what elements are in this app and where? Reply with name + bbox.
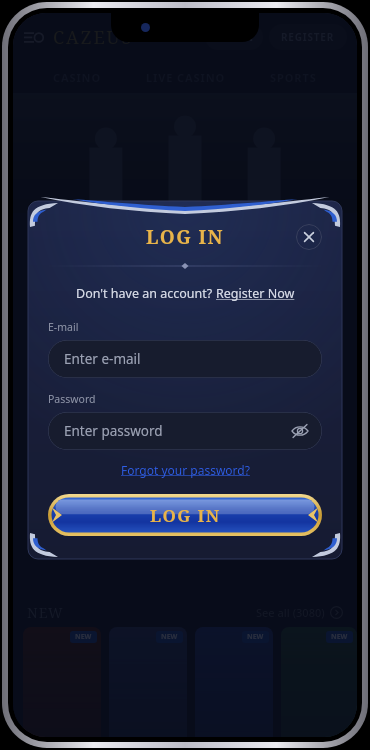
staticText: See all (3080) bbox=[256, 605, 325, 620]
staticText: Enter password bbox=[64, 422, 163, 440]
staticText: CAZEUS bbox=[53, 25, 134, 50]
staticText: Register Now bbox=[216, 285, 295, 302]
staticText: NEW bbox=[75, 632, 92, 642]
button[interactable]: NEW bbox=[109, 627, 187, 737]
button[interactable]: Enter e-mail bbox=[48, 340, 322, 378]
button[interactable]: Menu and search bbox=[23, 26, 45, 48]
staticText: LOG IN bbox=[146, 224, 224, 250]
button[interactable]: Register Now bbox=[216, 285, 295, 302]
button[interactable]: REGISTER bbox=[269, 24, 347, 50]
staticText: LOG IN bbox=[214, 30, 254, 44]
button[interactable]: NEW bbox=[195, 627, 273, 737]
staticText: Don't have an account? bbox=[76, 285, 216, 302]
button[interactable]: Forgot your password? bbox=[121, 462, 250, 478]
staticText: NEW bbox=[331, 632, 348, 642]
button[interactable]: NEW bbox=[23, 627, 101, 737]
button[interactable]: LOG IN bbox=[205, 24, 263, 50]
button[interactable]: Close bbox=[296, 224, 322, 250]
staticText: NEW bbox=[161, 632, 178, 642]
staticText: E-mail bbox=[48, 320, 79, 334]
staticText: Password bbox=[48, 392, 96, 406]
staticText: REGISTER bbox=[281, 30, 335, 44]
button[interactable]: NEW bbox=[281, 627, 357, 737]
button[interactable]: Enter password bbox=[48, 412, 322, 450]
staticText: LOG IN bbox=[150, 504, 221, 527]
staticText: Enter e-mail bbox=[64, 350, 141, 368]
button[interactable]: See all (3080) bbox=[256, 605, 343, 620]
staticText: NEW bbox=[27, 603, 64, 622]
button[interactable]: LOG IN bbox=[48, 494, 322, 536]
staticText: NEW bbox=[247, 632, 264, 642]
button[interactable]: Show password bbox=[290, 421, 310, 441]
staticText: Forgot your password? bbox=[121, 462, 250, 478]
